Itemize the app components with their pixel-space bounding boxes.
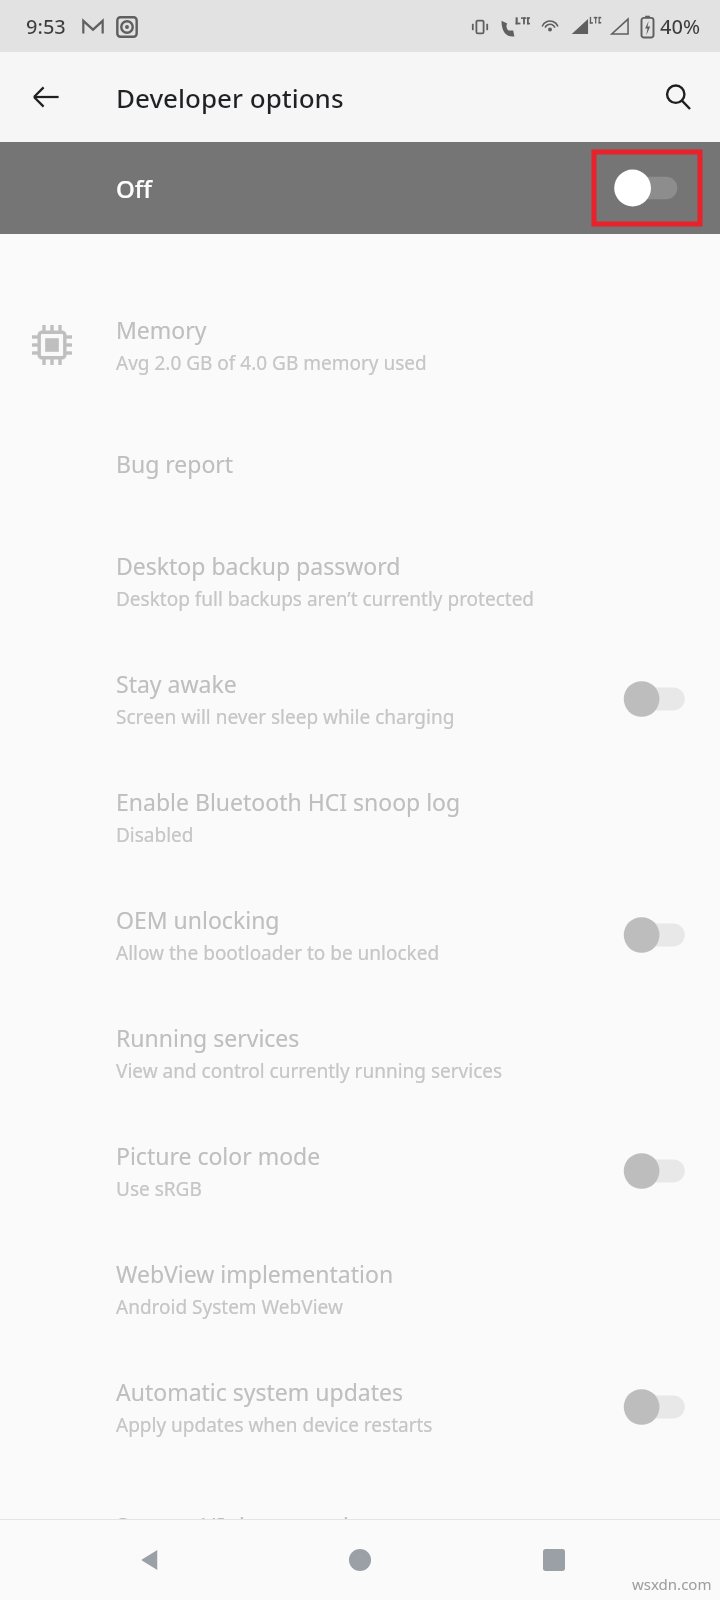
button[interactable]: Off <box>0 142 720 234</box>
button[interactable]: Recent apps <box>516 1522 592 1598</box>
staticText: Running services <box>116 1022 300 1053</box>
button[interactable]: Bug report <box>0 404 720 522</box>
staticText: WebView implementation <box>116 1258 394 1289</box>
button[interactable]: Running services <box>0 994 720 1112</box>
button[interactable]: Search <box>650 69 706 125</box>
button[interactable]: System UI demo mode <box>0 1466 720 1584</box>
staticText: Android System WebView <box>116 1294 343 1320</box>
staticText: Desktop full backups aren’t currently pr… <box>116 586 535 612</box>
staticText: Avg 2.0 GB of 4.0 GB memory used <box>116 350 427 376</box>
staticText: Screen will never sleep while charging <box>116 704 455 730</box>
button[interactable]: Automatic system updates <box>618 1382 694 1432</box>
button[interactable]: Desktop backup password <box>0 522 720 640</box>
staticText: wsxdn.com <box>632 1574 712 1594</box>
button[interactable]: OEM unlocking <box>0 876 720 994</box>
button[interactable]: Toggle developer options <box>594 152 700 224</box>
button[interactable]: Automatic system updates <box>0 1348 720 1466</box>
staticText: Disabled <box>116 822 194 848</box>
button[interactable]: Home <box>322 1522 398 1598</box>
staticText: Bug report <box>116 448 234 479</box>
staticText: View and control currently running servi… <box>116 1058 503 1084</box>
staticText: OEM unlocking <box>116 904 280 935</box>
button[interactable]: Stay awake <box>618 674 694 724</box>
button[interactable]: Stay awake <box>0 640 720 758</box>
staticText: Off <box>116 172 152 205</box>
button[interactable]: Enable Bluetooth HCI snoop log <box>0 758 720 876</box>
button[interactable]: Memory <box>0 286 720 404</box>
button[interactable]: Back <box>18 69 74 125</box>
staticText: Picture color mode <box>116 1140 321 1171</box>
staticText: Memory <box>116 314 207 345</box>
button[interactable]: Picture color mode <box>0 1112 720 1230</box>
staticText: System UI demo mode <box>116 1510 362 1541</box>
staticText: Stay awake <box>116 668 237 699</box>
staticText: Use sRGB <box>116 1176 202 1202</box>
button[interactable]: WebView implementation <box>0 1230 720 1348</box>
button[interactable]: Back <box>112 1522 188 1598</box>
staticText: Allow the bootloader to be unlocked <box>116 940 440 966</box>
staticText: Automatic system updates <box>116 1376 404 1407</box>
staticText: 9:53 <box>26 13 66 40</box>
staticText: Desktop backup password <box>116 550 401 581</box>
staticText: Apply updates when device restarts <box>116 1412 433 1438</box>
staticText: Enable Bluetooth HCI snoop log <box>116 786 461 817</box>
staticText: 40% <box>660 13 700 40</box>
button[interactable]: Picture color mode <box>618 1146 694 1196</box>
button[interactable]: OEM unlocking <box>618 910 694 960</box>
staticText: Developer options <box>116 80 344 115</box>
